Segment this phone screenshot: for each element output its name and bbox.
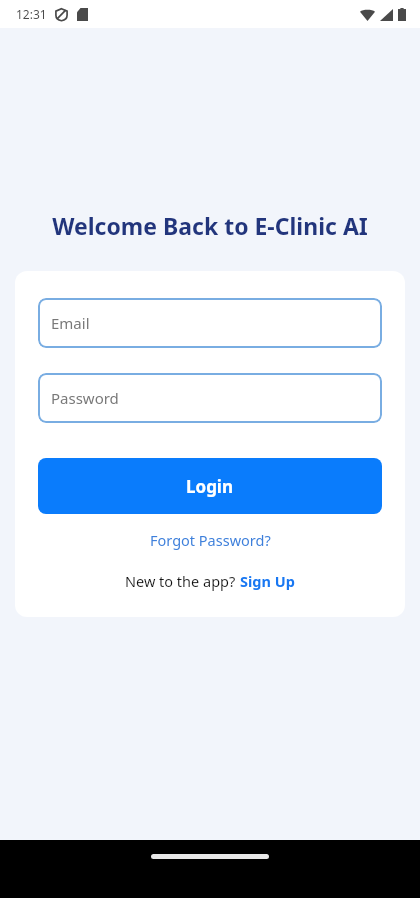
button[interactable]: Sign Up <box>240 571 295 591</box>
button[interactable]: Password <box>38 373 382 423</box>
staticText: Welcome Back to E-Clinic AI <box>40 210 380 241</box>
staticText: Forgot Password? <box>150 530 271 550</box>
staticText: New to the app? <box>125 571 240 591</box>
staticText: Login <box>186 475 234 498</box>
staticText: Sign Up <box>240 571 295 591</box>
button[interactable]: Email <box>38 298 382 348</box>
staticText: Email <box>51 313 90 333</box>
button[interactable]: Login <box>38 458 382 514</box>
other: Home gesture bar <box>151 854 269 859</box>
staticText: Password <box>51 388 119 408</box>
staticText: 12:31 <box>16 6 47 22</box>
button[interactable]: Forgot Password? <box>38 523 382 557</box>
